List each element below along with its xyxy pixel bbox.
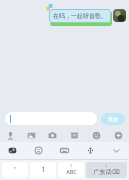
staticText: ABC	[66, 168, 77, 175]
button[interactable]	[5, 112, 97, 125]
staticText: 3	[105, 163, 108, 168]
staticText: 在吗，一起听首歌。	[53, 12, 107, 20]
button[interactable]: '	[2, 162, 28, 178]
staticText: 2	[70, 163, 73, 168]
button[interactable]: Voice	[0, 128, 21, 142]
button[interactable]: Cursor	[77, 142, 103, 159]
button[interactable]: Keyboard	[51, 142, 77, 159]
button[interactable]: Emoticon	[25, 142, 51, 159]
button[interactable]: 2	[58, 162, 84, 178]
button[interactable]: More	[107, 128, 129, 142]
button[interactable]: Avatar	[113, 9, 126, 22]
button[interactable]: Camera	[42, 128, 63, 142]
button[interactable]: Collapse	[103, 142, 129, 159]
button[interactable]: Emoji	[85, 128, 107, 142]
button[interactable]: 发送	[101, 113, 125, 125]
staticText: 1	[41, 165, 46, 175]
button[interactable]: Gallery	[21, 128, 42, 142]
staticText: 广东话⌫	[93, 168, 120, 176]
button[interactable]: 在吗，一起听首歌。	[49, 9, 111, 23]
button[interactable]: File	[63, 128, 85, 142]
staticText: '	[14, 165, 16, 175]
button[interactable]: 3	[86, 162, 127, 178]
staticText: 发送	[108, 116, 118, 122]
button[interactable]: 1	[30, 162, 56, 178]
button[interactable]: Sticker	[0, 142, 25, 159]
